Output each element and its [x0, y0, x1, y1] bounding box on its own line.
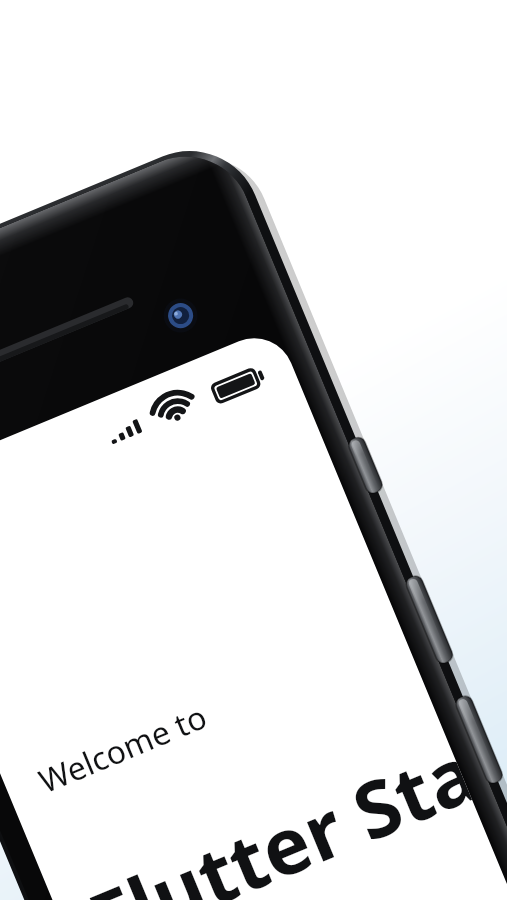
- button[interactable]: Phone showing welcome screen: [0, 0, 507, 900]
